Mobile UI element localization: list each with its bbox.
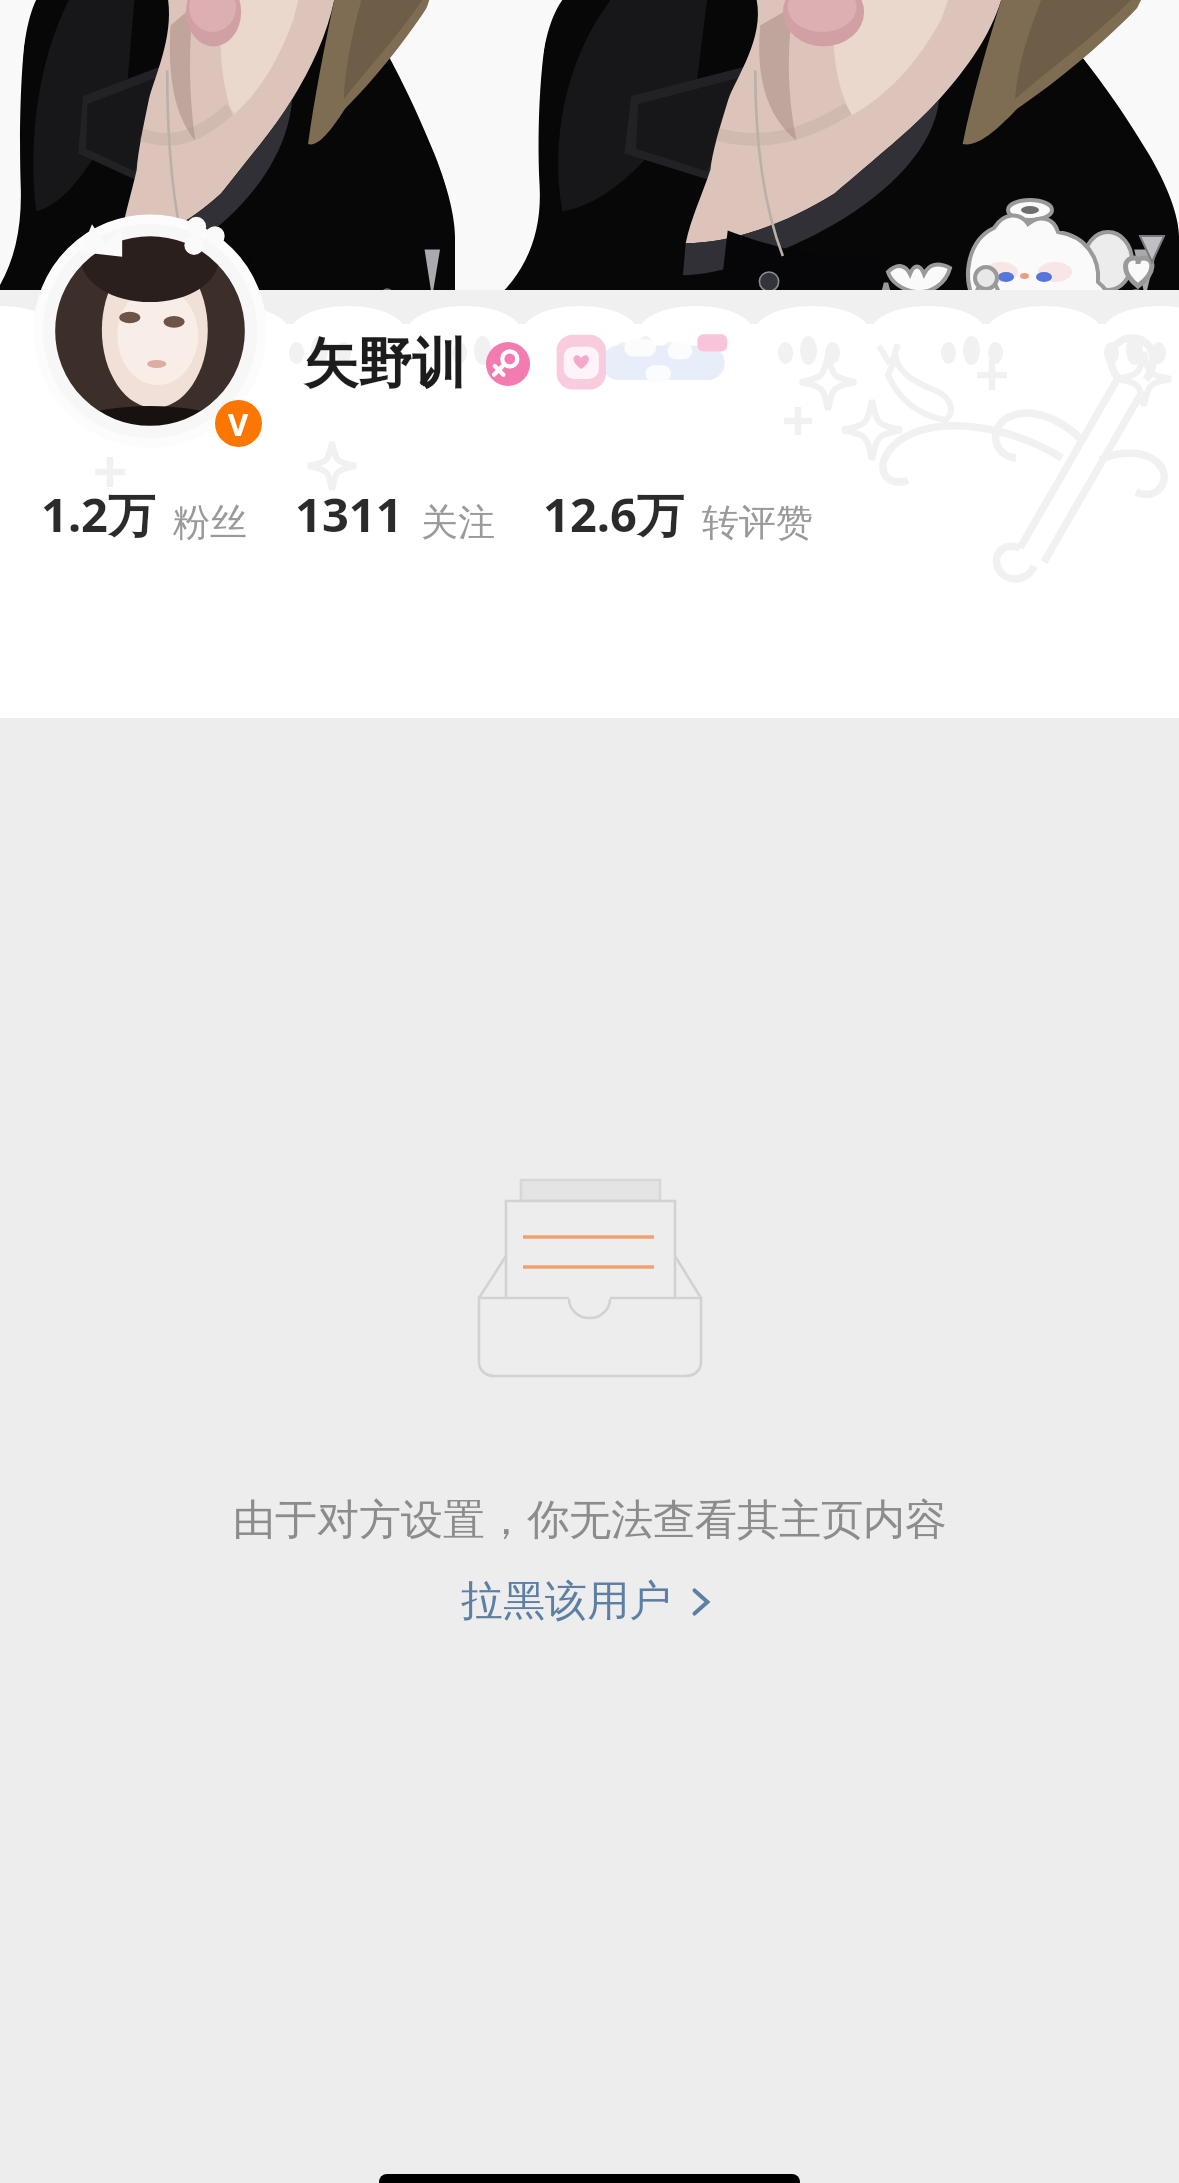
- staticText: 由于对方设置，你无法查看其主页内容: [233, 1494, 947, 1547]
- button[interactable]: Verified account: [215, 400, 262, 447]
- button[interactable]: Cover photo: [0, 0, 1179, 320]
- staticText: 矢野训: [304, 330, 466, 398]
- staticText: V: [228, 403, 249, 445]
- button[interactable]: 1311: [295, 482, 495, 546]
- staticText: 拉黑该用户: [461, 1575, 671, 1628]
- button[interactable]: Female: [486, 342, 530, 386]
- staticText: 1.2万: [41, 482, 155, 546]
- button[interactable]: Profile badge: [554, 333, 730, 395]
- button[interactable]: 矢野训: [304, 330, 730, 398]
- button[interactable]: 1.2万: [41, 482, 247, 546]
- staticText: 粉丝: [173, 499, 247, 546]
- button[interactable]: 12.6万: [543, 482, 813, 546]
- button[interactable]: Profile avatar: [34, 215, 266, 447]
- staticText: 转评赞: [702, 499, 813, 546]
- staticText: 12.6万: [543, 482, 684, 546]
- button[interactable]: 拉黑该用户: [461, 1575, 719, 1628]
- staticText: 1311: [295, 482, 403, 546]
- staticText: 关注: [421, 499, 495, 546]
